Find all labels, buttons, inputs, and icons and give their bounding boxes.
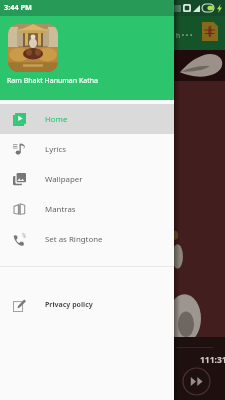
button[interactable]: Open book: [202, 22, 218, 41]
button[interactable]: Set as Ringtone: [0, 224, 174, 254]
button[interactable]: Home: [0, 104, 174, 134]
button[interactable]: Next: [182, 367, 211, 396]
staticText: Wallpaper: [45, 174, 83, 185]
staticText: 3:44 PM: [4, 2, 32, 12]
button[interactable]: Lyrics: [0, 134, 174, 164]
button[interactable]: Mantras: [0, 194, 174, 224]
staticText: Set as Ringtone: [45, 234, 103, 245]
button[interactable]: Privacy policy: [0, 290, 174, 320]
staticText: Privacy policy: [45, 300, 93, 310]
button[interactable]: Wallpaper: [0, 164, 174, 194]
staticText: Ram Bhakt Hanuman Katha: [7, 76, 98, 86]
staticText: h • • •: [176, 31, 193, 40]
staticText: Lyrics: [45, 144, 67, 155]
staticText: Mantras: [45, 204, 76, 215]
staticText: 111:31: [200, 354, 225, 366]
staticText: Home: [45, 114, 68, 125]
